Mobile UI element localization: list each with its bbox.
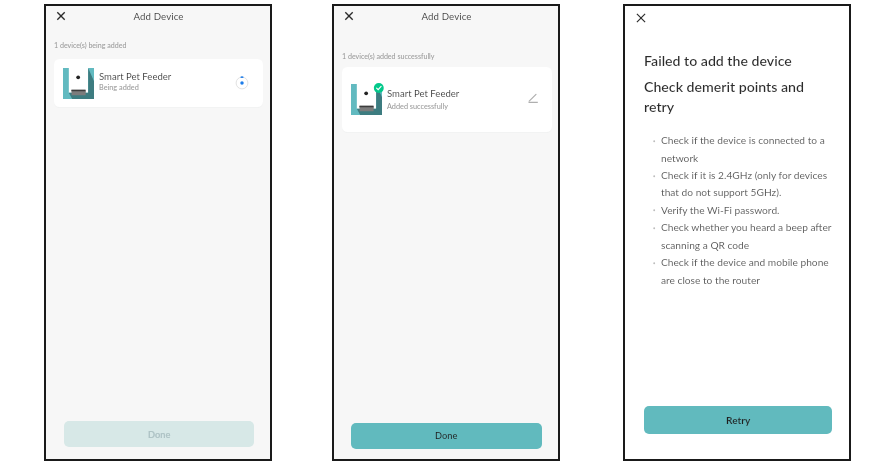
staticText: Check if it is 2.4GHz (only for devices [661, 169, 828, 181]
staticText: Being added [99, 83, 139, 92]
staticText: retry [644, 98, 675, 115]
staticText: Done [148, 429, 171, 440]
staticText: network [661, 152, 699, 164]
staticText: Retry [726, 414, 751, 426]
staticText: Check if the device is connected to a [661, 134, 825, 146]
staticText: Done [435, 430, 458, 441]
button[interactable]: Smart Pet Feeder [54, 59, 263, 107]
button[interactable]: Close [630, 7, 652, 29]
button[interactable]: Done [64, 421, 254, 447]
staticText: Check whether you heard a beep after [661, 221, 832, 233]
button[interactable]: Smart Pet Feeder [342, 67, 552, 132]
staticText: 1 device(s) added successfully [342, 52, 435, 61]
button[interactable]: Close [50, 5, 72, 27]
staticText: scanning a QR code [661, 239, 750, 251]
button[interactable]: Retry [644, 406, 832, 434]
staticText: Check if the device and mobile phone [661, 256, 829, 268]
staticText: Verify the Wi-Fi password. [661, 204, 780, 216]
button[interactable]: Rename device [528, 93, 540, 105]
staticText: Smart Pet Feeder [99, 71, 172, 82]
staticText: Add Device [334, 10, 559, 22]
staticText: Check demerit points and [644, 78, 804, 95]
button[interactable]: Close [338, 5, 360, 27]
staticText: 1 device(s) being added [54, 41, 127, 50]
staticText: Added successfully [387, 102, 448, 111]
staticText: Failed to add the device [644, 52, 792, 69]
button[interactable]: Done [351, 423, 542, 449]
staticText: that do not support 5GHz). [661, 186, 782, 198]
staticText: are close to the router [661, 274, 760, 286]
staticText: Smart Pet Feeder [387, 88, 460, 99]
staticText: Add Device [46, 10, 271, 22]
